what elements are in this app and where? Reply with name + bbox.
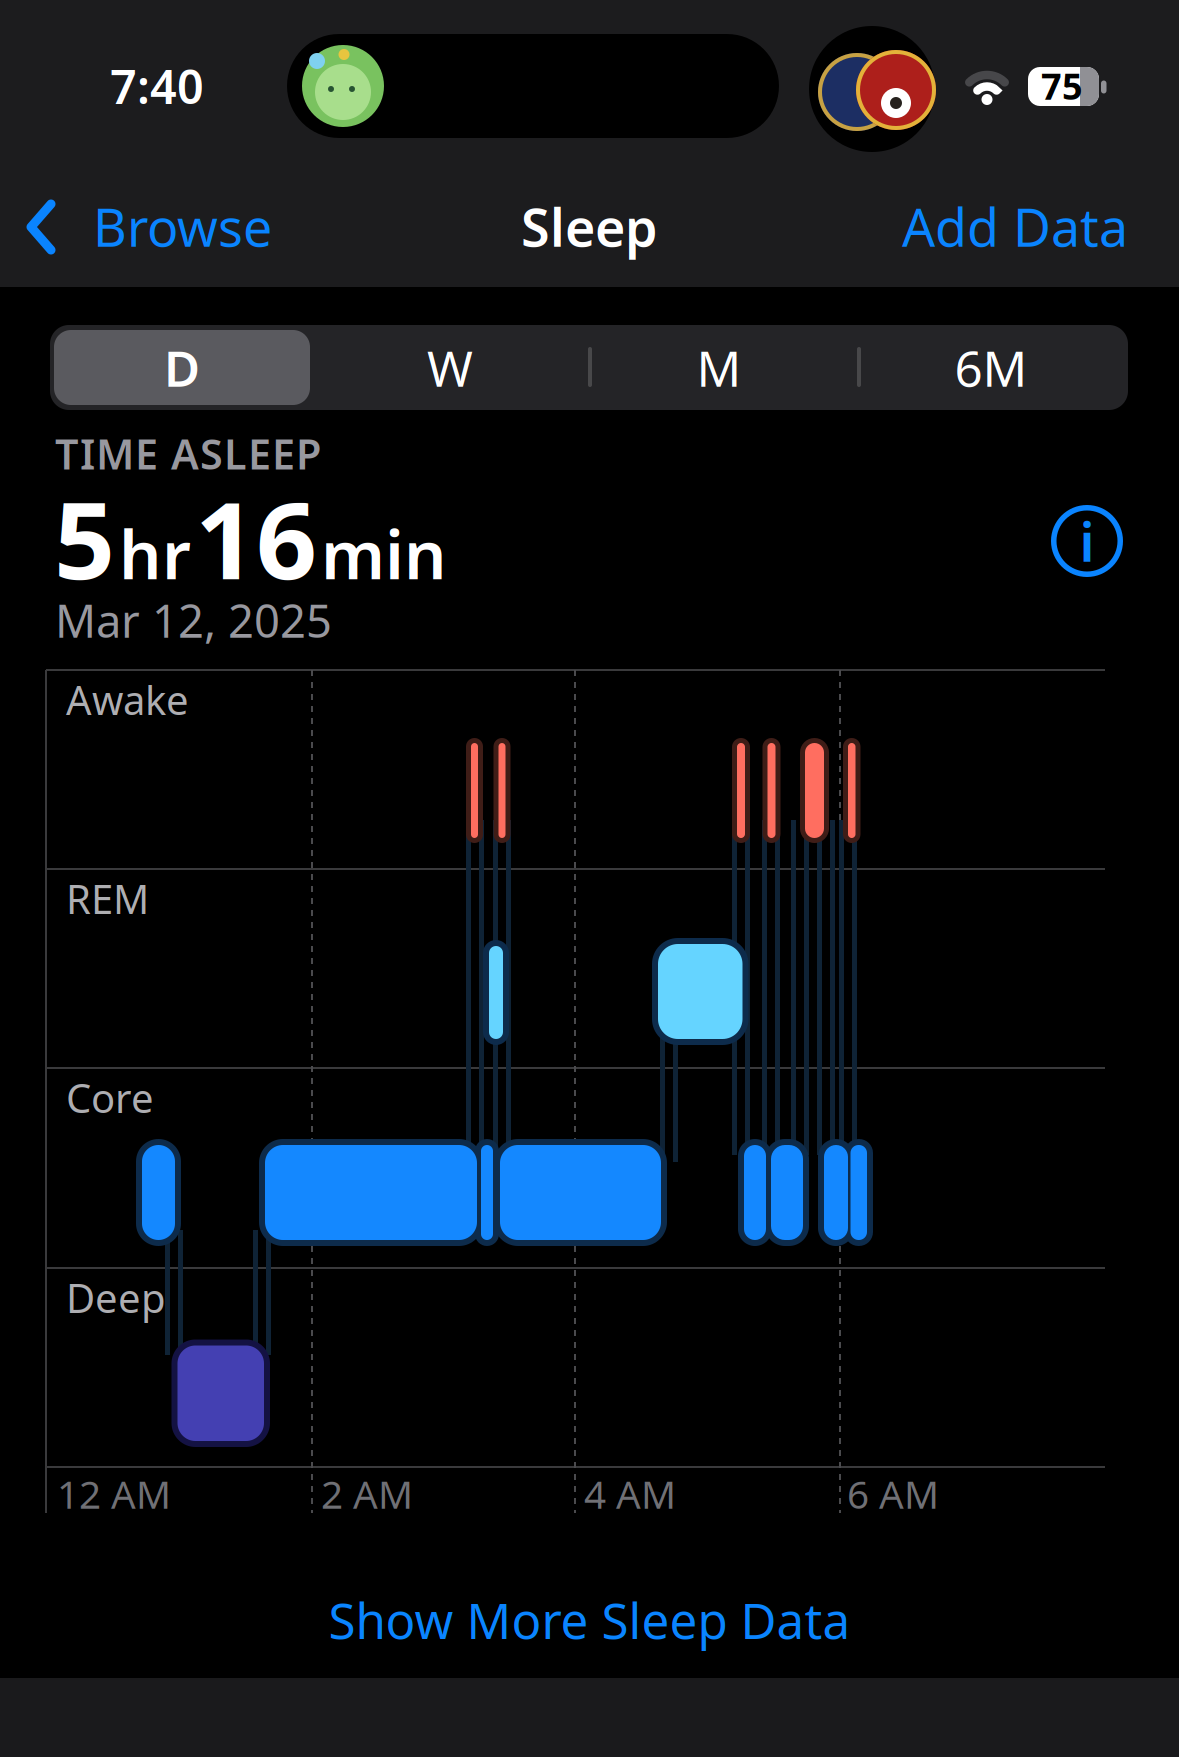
staticText: Add Data xyxy=(902,192,1128,261)
staticText: i xyxy=(1079,506,1094,576)
staticText: 6M xyxy=(954,335,1027,400)
staticText: D xyxy=(164,335,200,400)
staticText: Core xyxy=(66,1071,154,1124)
staticText: 5 xyxy=(54,467,115,609)
staticText: TIME ASLEEP xyxy=(55,426,321,481)
button[interactable]: Add Data xyxy=(902,192,1128,261)
staticText: 75 xyxy=(1041,62,1083,110)
staticText: 2 AM xyxy=(321,1468,413,1519)
staticText: 4 AM xyxy=(584,1468,676,1519)
staticText: hr xyxy=(119,509,191,598)
button[interactable]: D xyxy=(54,330,310,405)
button[interactable]: Show More Sleep Data xyxy=(328,1587,850,1652)
button[interactable]: 6M xyxy=(861,330,1121,405)
staticText: 7:40 xyxy=(110,55,204,117)
staticText: 6 AM xyxy=(847,1468,939,1519)
staticText: 12 AM xyxy=(57,1468,171,1519)
button[interactable]: W xyxy=(320,330,580,405)
staticText: Browse xyxy=(93,192,272,261)
staticText: Deep xyxy=(66,1271,166,1324)
staticText: M xyxy=(696,335,741,400)
staticText: Sleep xyxy=(521,192,658,261)
button[interactable]: About Time Asleep xyxy=(1051,505,1123,577)
staticText: 16 xyxy=(195,467,317,609)
button[interactable]: M xyxy=(589,330,849,405)
staticText: REM xyxy=(66,872,149,925)
staticText: min xyxy=(321,509,447,598)
staticText: Mar 12, 2025 xyxy=(55,590,332,650)
staticText: Awake xyxy=(66,673,189,726)
staticText: Show More Sleep Data xyxy=(328,1587,850,1652)
button[interactable]: Browse xyxy=(28,192,207,261)
staticText: W xyxy=(427,335,473,400)
